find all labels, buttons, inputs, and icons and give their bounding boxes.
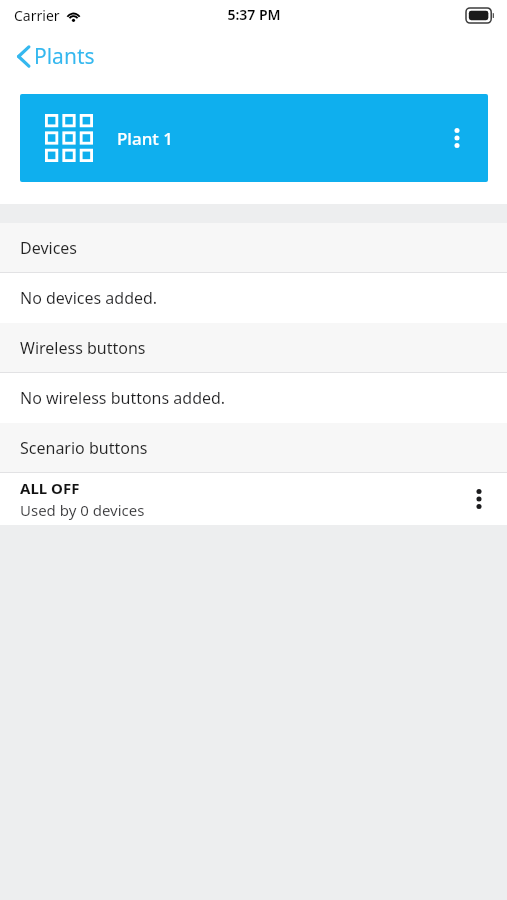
- staticText: Used by 0 devices: [20, 500, 145, 520]
- staticText: Devices: [20, 237, 78, 259]
- button[interactable]: No devices added.: [0, 273, 507, 323]
- staticText: Scenario buttons: [20, 437, 148, 459]
- staticText: Wireless buttons: [20, 337, 146, 359]
- staticText: Carrier: [14, 6, 60, 25]
- staticText: 5:37 PM: [227, 5, 281, 24]
- staticText: No devices added.: [20, 287, 158, 309]
- button[interactable]: Plants: [14, 38, 97, 75]
- staticText: ALL OFF: [20, 478, 80, 498]
- staticText: Plants: [34, 42, 95, 71]
- staticText: No wireless buttons added.: [20, 387, 226, 409]
- button[interactable]: More options for ALL OFF: [462, 482, 496, 516]
- button[interactable]: Plant 1: [20, 94, 488, 182]
- button[interactable]: More options for Plant 1: [440, 121, 474, 155]
- button[interactable]: No wireless buttons added.: [0, 373, 507, 423]
- button[interactable]: ALL OFF: [0, 473, 507, 525]
- staticText: Plant 1: [117, 127, 173, 150]
